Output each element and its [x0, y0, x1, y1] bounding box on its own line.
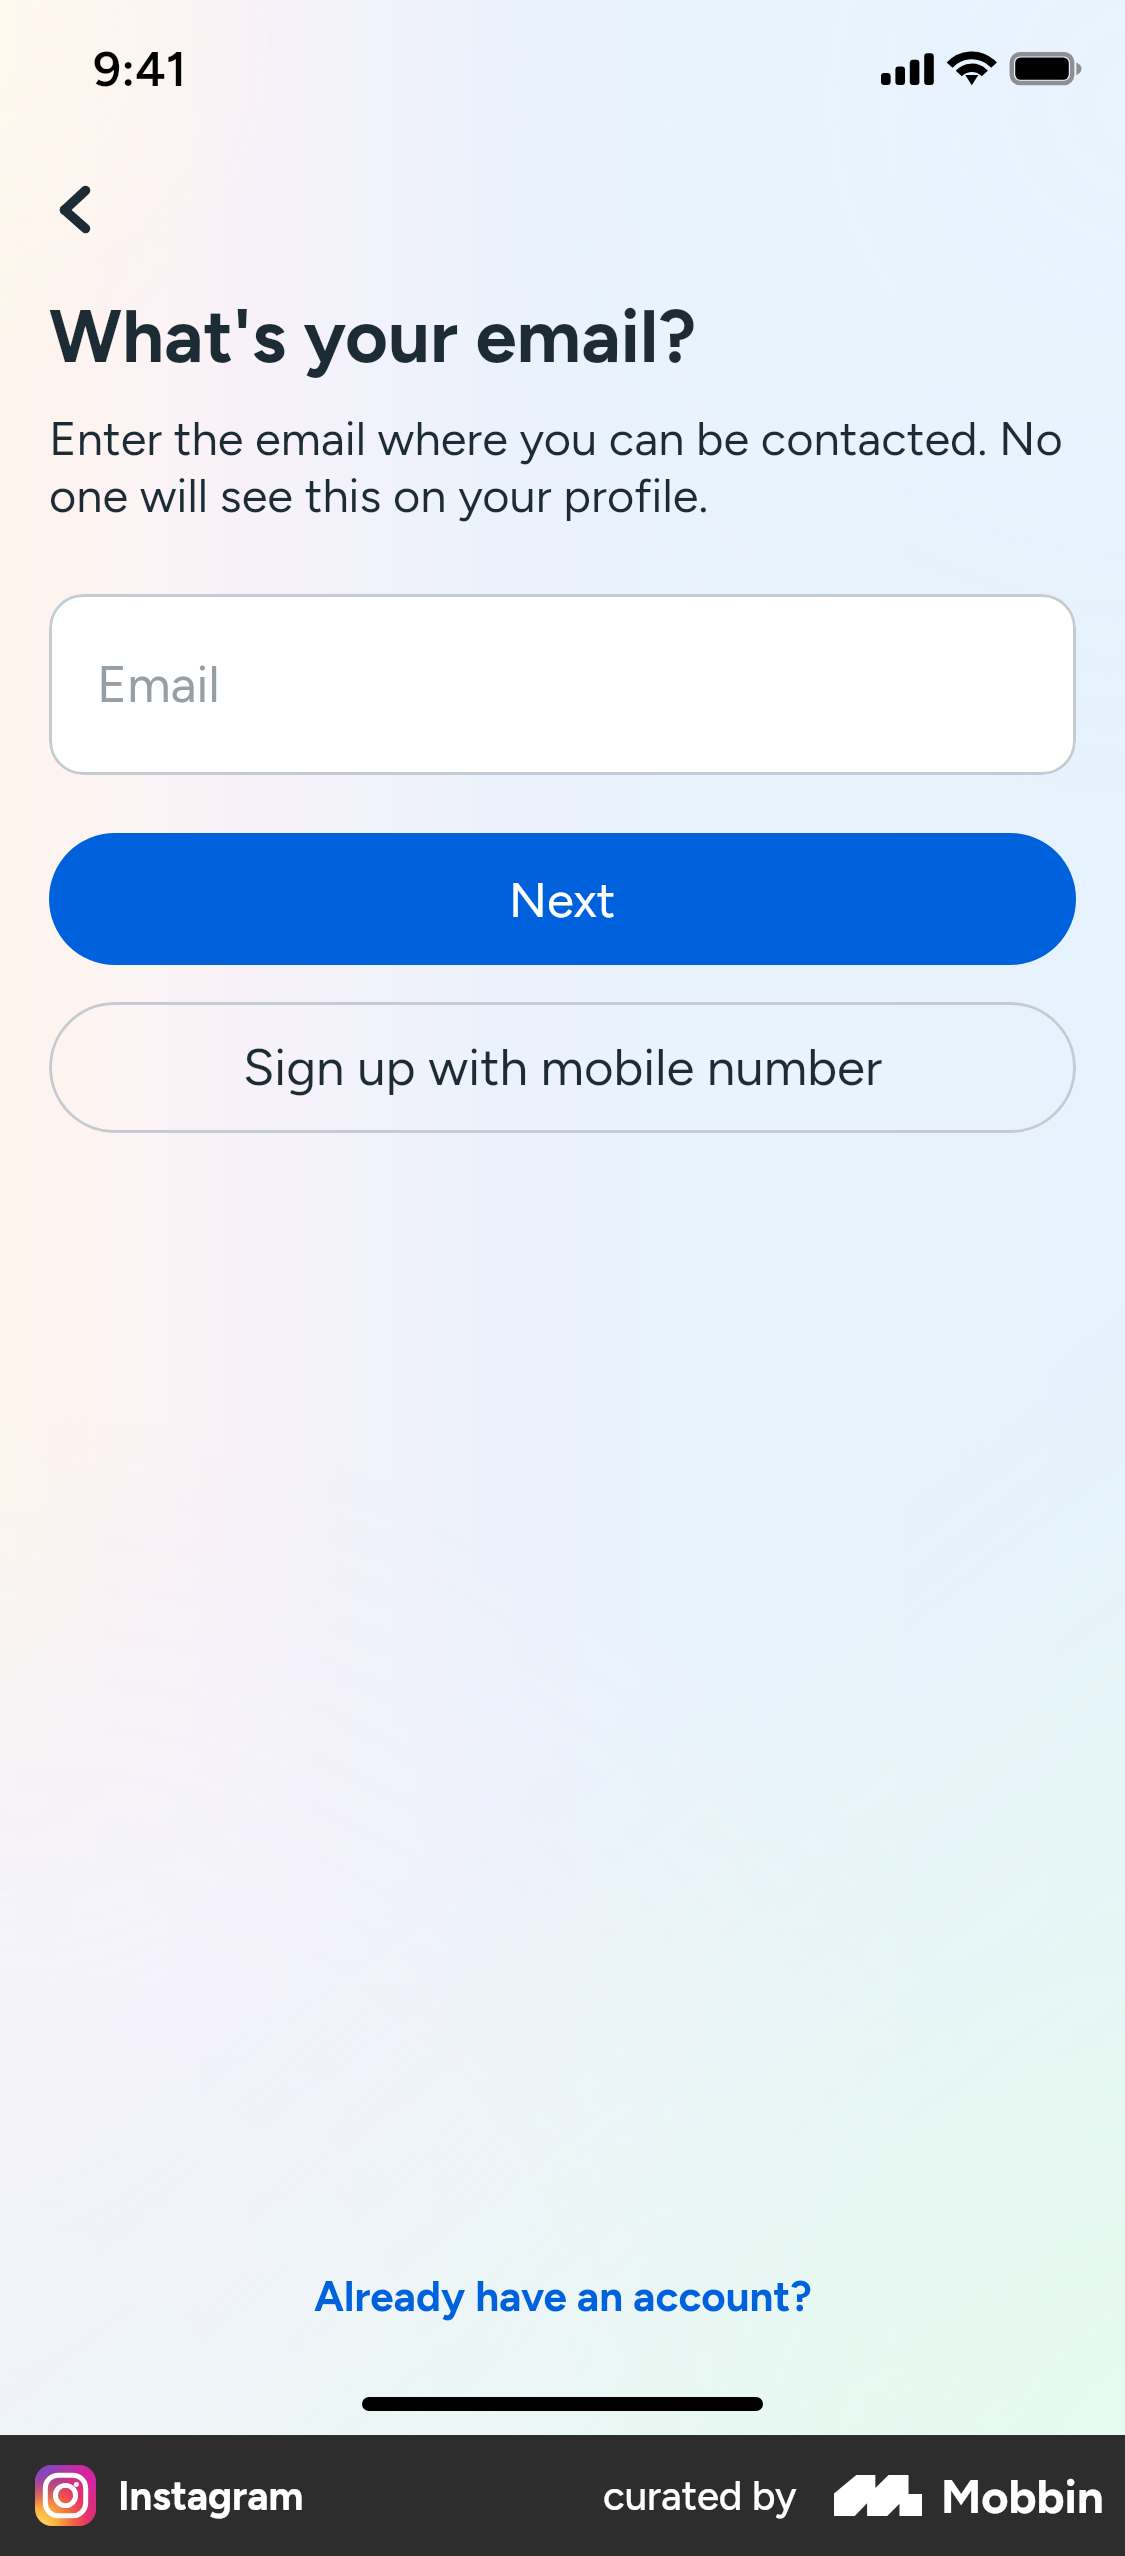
button[interactable]: Back: [20, 140, 110, 230]
staticText: Email: [97, 654, 220, 715]
staticText: Mobbin: [941, 2468, 1104, 2524]
staticText: 9:41: [93, 39, 187, 98]
button[interactable]: Email: [49, 594, 1076, 775]
button[interactable]: Sign up with mobile number: [49, 1002, 1076, 1133]
staticText: curated by: [603, 2472, 797, 2520]
staticText: What's your email?: [49, 292, 697, 381]
staticText: Sign up with mobile number: [243, 1037, 883, 1098]
staticText: Instagram: [118, 2472, 304, 2520]
staticText: Next: [509, 870, 616, 929]
button[interactable]: Next: [49, 833, 1076, 965]
staticText: Enter the email where you can be contact…: [49, 410, 1076, 524]
button[interactable]: Already have an account?: [0, 2243, 1125, 2333]
staticText: Already have an account?: [314, 2271, 812, 2321]
